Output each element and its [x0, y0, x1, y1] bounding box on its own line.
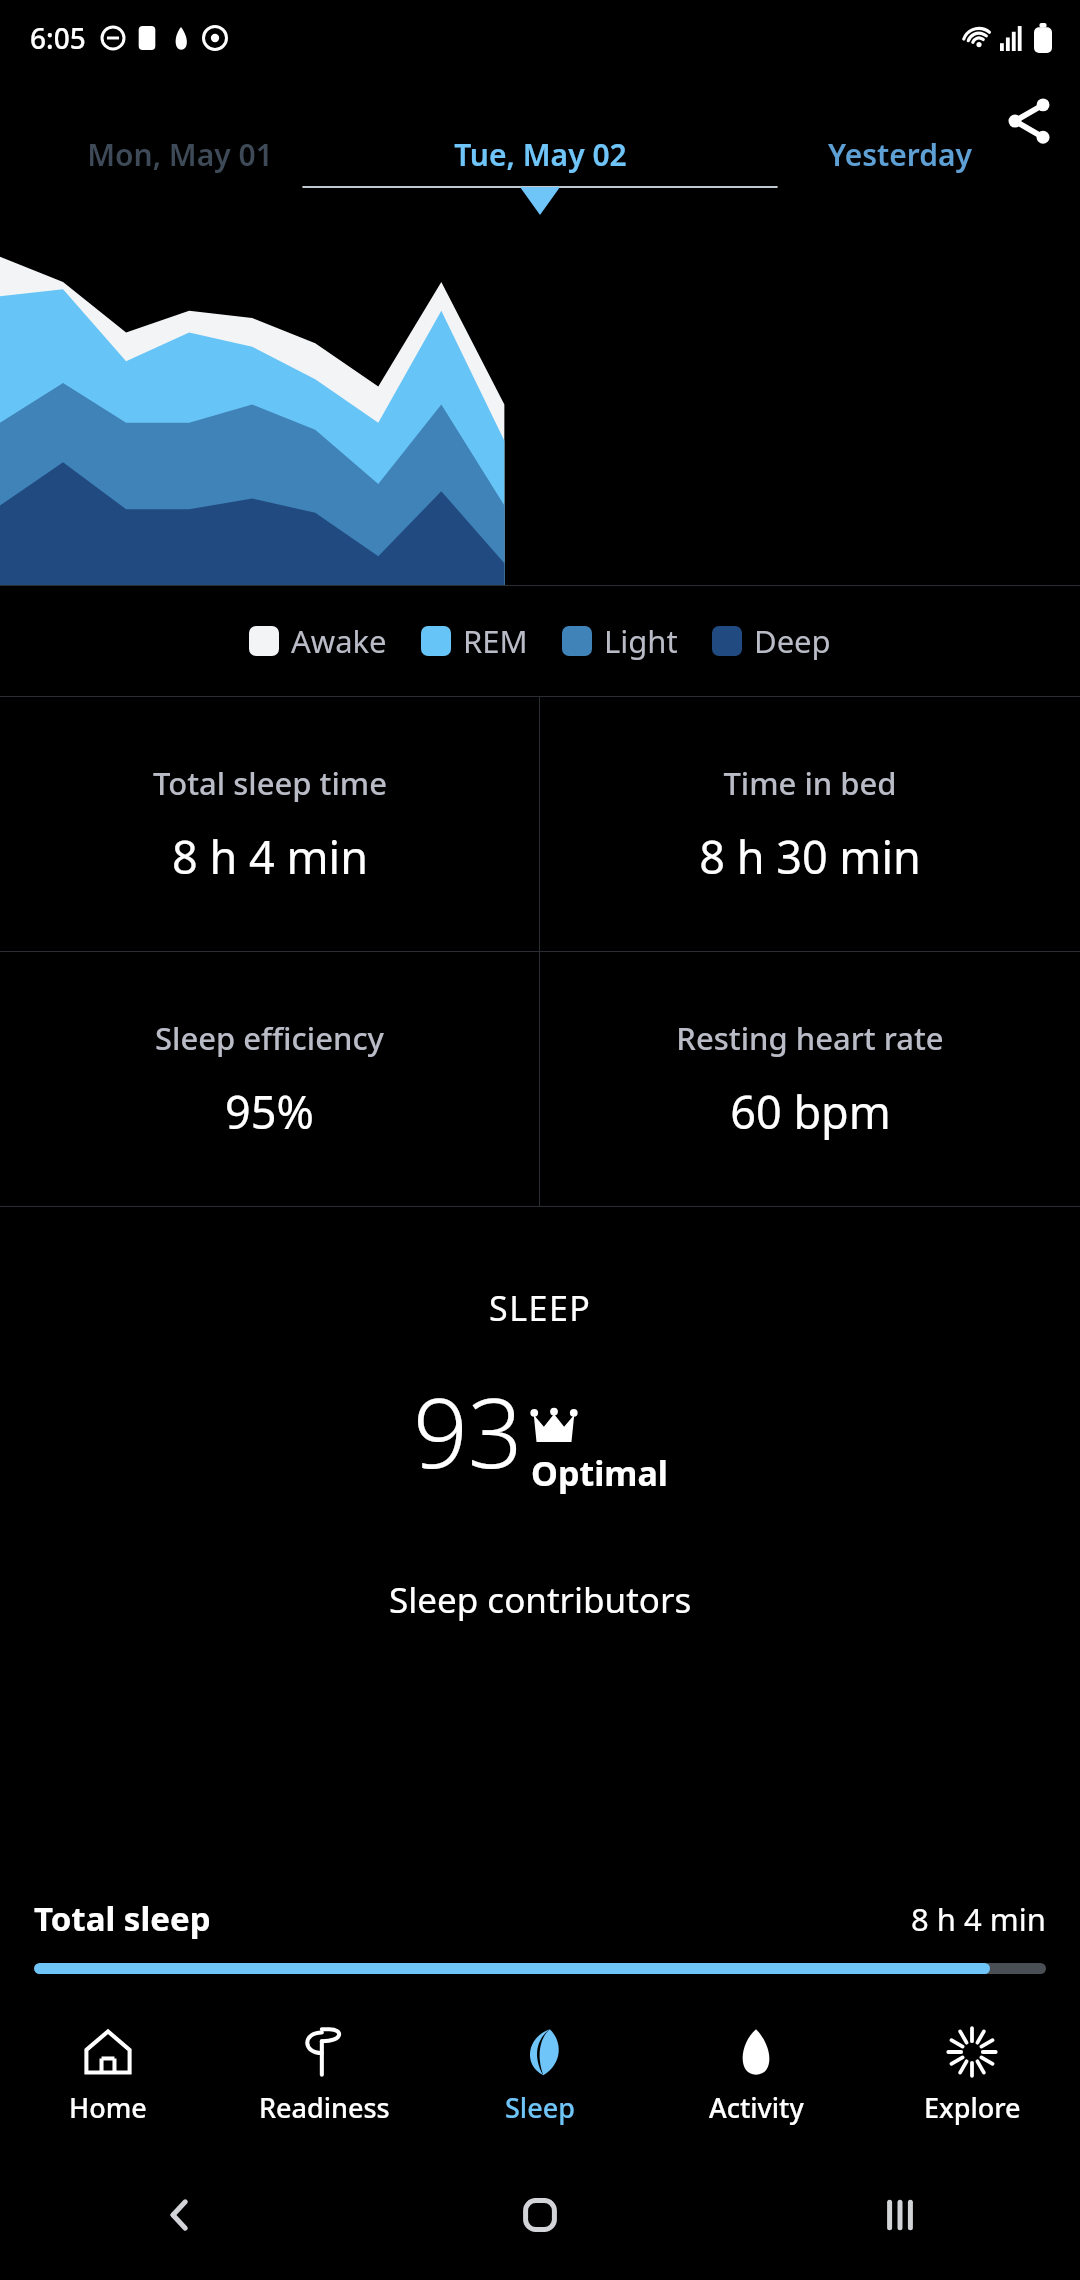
button[interactable]: Sleep efficiency [0, 952, 539, 1206]
staticText: REM [463, 620, 528, 662]
staticText: Sleep efficiency [155, 1017, 384, 1059]
staticText: 8 h 4 min [172, 826, 368, 887]
staticText: 6:05 [30, 19, 86, 57]
staticText: 93 [413, 1365, 523, 1496]
button[interactable]: Back [0, 2150, 360, 2280]
button[interactable]: Total sleep [34, 1896, 1046, 2000]
button[interactable]: Resting heart rate [540, 952, 1080, 1206]
staticText: Time in bed [723, 762, 897, 804]
button[interactable]: Light [562, 620, 678, 662]
staticText: Total sleep time [153, 762, 387, 804]
staticText: Optimal [531, 1450, 668, 1496]
staticText: 8 h 4 min [911, 1898, 1046, 1940]
button[interactable]: Home [0, 2000, 216, 2150]
button[interactable]: Yesterday [720, 75, 1080, 175]
button[interactable]: Awake [249, 620, 387, 662]
staticText: Sleep [505, 2089, 575, 2126]
button[interactable]: REM [421, 620, 528, 662]
staticText: Explore [924, 2089, 1021, 2126]
staticText: Total sleep [34, 1896, 211, 1941]
button[interactable]: Sleep [432, 2000, 648, 2150]
staticText: Resting heart rate [676, 1017, 944, 1059]
staticText: SLEEP [489, 1285, 592, 1331]
staticText: Light [604, 620, 678, 662]
staticText: Readiness [259, 2089, 390, 2126]
staticText: Deep [754, 620, 831, 662]
button[interactable]: Home [360, 2150, 720, 2280]
button[interactable]: Total sleep time [0, 697, 539, 951]
staticText: Mon, May 01 [87, 134, 273, 175]
staticText: Activity [709, 2089, 804, 2126]
button[interactable]: Deep [712, 620, 831, 662]
button[interactable]: Readiness [216, 2000, 432, 2150]
staticText: Yesterday [828, 134, 972, 175]
staticText: 60 bpm [730, 1081, 891, 1142]
button[interactable]: Activity [648, 2000, 864, 2150]
staticText: Home [69, 2089, 147, 2126]
staticText: 8 h 30 min [699, 826, 921, 887]
button[interactable]: Tue, May 02 [360, 75, 720, 175]
button[interactable]: Recent apps [720, 2150, 1080, 2280]
staticText: 95% [225, 1081, 314, 1142]
staticText: Sleep contributors [389, 1576, 692, 1624]
button[interactable]: Time in bed [540, 697, 1080, 951]
staticText: Awake [291, 620, 387, 662]
button[interactable]: Share [1002, 93, 1056, 147]
button[interactable]: Explore [864, 2000, 1080, 2150]
staticText: Tue, May 02 [454, 134, 627, 175]
button[interactable]: Mon, May 01 [0, 75, 360, 175]
